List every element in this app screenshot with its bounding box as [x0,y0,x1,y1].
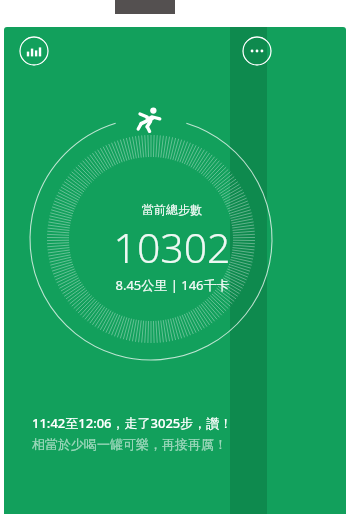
button[interactable]: More options [242,36,272,66]
staticText: 11:42至12:06，走了3025步，讚！ [32,414,233,432]
button[interactable]: 11:42至12:06，走了3025步，讚！ [32,414,346,452]
button[interactable]: Statistics [19,36,49,66]
staticText: 當前總步數 [142,202,202,217]
staticText: 8.45公里 | 146千卡 [115,276,230,294]
button[interactable]: 當前總步數 [4,202,346,294]
staticText: 相當於少喝一罐可樂，再接再厲！ [32,436,227,452]
staticText: 10302 [113,219,231,275]
